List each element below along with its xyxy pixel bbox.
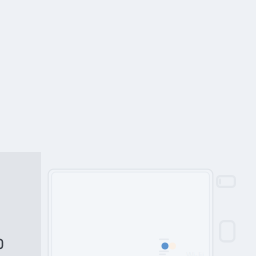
button[interactable]: Device — [219, 220, 235, 242]
button[interactable]: Battery — [216, 175, 236, 188]
button[interactable]: Show Sidebar — [0, 239, 3, 249]
